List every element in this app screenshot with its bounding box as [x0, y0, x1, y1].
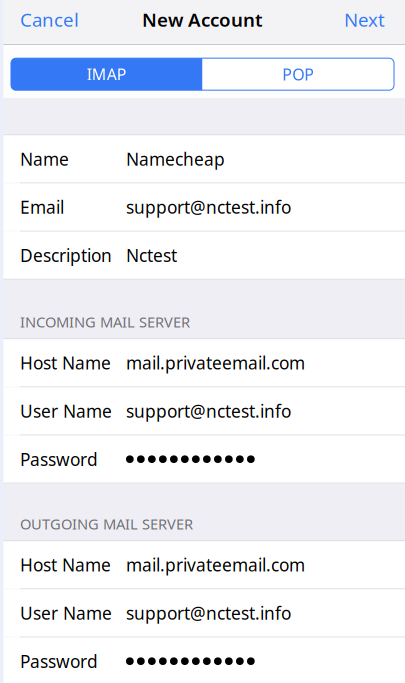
staticText: support@nctest.info — [126, 399, 291, 422]
button[interactable]: Description — [0, 232, 405, 279]
staticText: Nctest — [126, 244, 177, 267]
button[interactable]: Password — [0, 638, 405, 683]
staticText: Host Name — [20, 351, 111, 374]
staticText: support@nctest.info — [126, 601, 291, 624]
staticText: Cancel — [20, 7, 79, 32]
staticText: User Name — [20, 601, 112, 624]
staticText: IMAP — [87, 64, 127, 85]
button[interactable]: Name — [0, 135, 405, 182]
staticText: mail.privateemail.com — [126, 351, 305, 374]
staticText: mail.privateemail.com — [126, 553, 305, 576]
button[interactable]: Email — [0, 183, 405, 231]
button[interactable]: Password — [0, 436, 405, 483]
staticText: OUTGOING MAIL SERVER — [20, 514, 193, 534]
staticText: New Account — [142, 7, 263, 32]
button[interactable]: Host Name — [0, 541, 405, 588]
button[interactable]: Cancel — [11, 0, 88, 39]
staticText: support@nctest.info — [126, 196, 291, 219]
staticText: User Name — [20, 399, 112, 422]
staticText: Host Name — [20, 553, 111, 576]
button[interactable]: POP — [202, 58, 394, 90]
button[interactable]: IMAP — [11, 58, 202, 90]
button[interactable]: User Name — [0, 387, 405, 435]
staticText: Password — [20, 650, 98, 673]
staticText: INCOMING MAIL SERVER — [20, 312, 190, 332]
button[interactable]: Next — [335, 0, 394, 39]
staticText: Email — [20, 196, 64, 219]
staticText: Namecheap — [126, 147, 225, 170]
staticText: Next — [344, 7, 385, 32]
button[interactable]: User Name — [0, 589, 405, 637]
staticText: Name — [20, 147, 69, 170]
staticText: Password — [20, 448, 98, 471]
button[interactable]: Host Name — [0, 339, 405, 386]
staticText: Description — [20, 244, 112, 267]
staticText: POP — [282, 64, 314, 85]
